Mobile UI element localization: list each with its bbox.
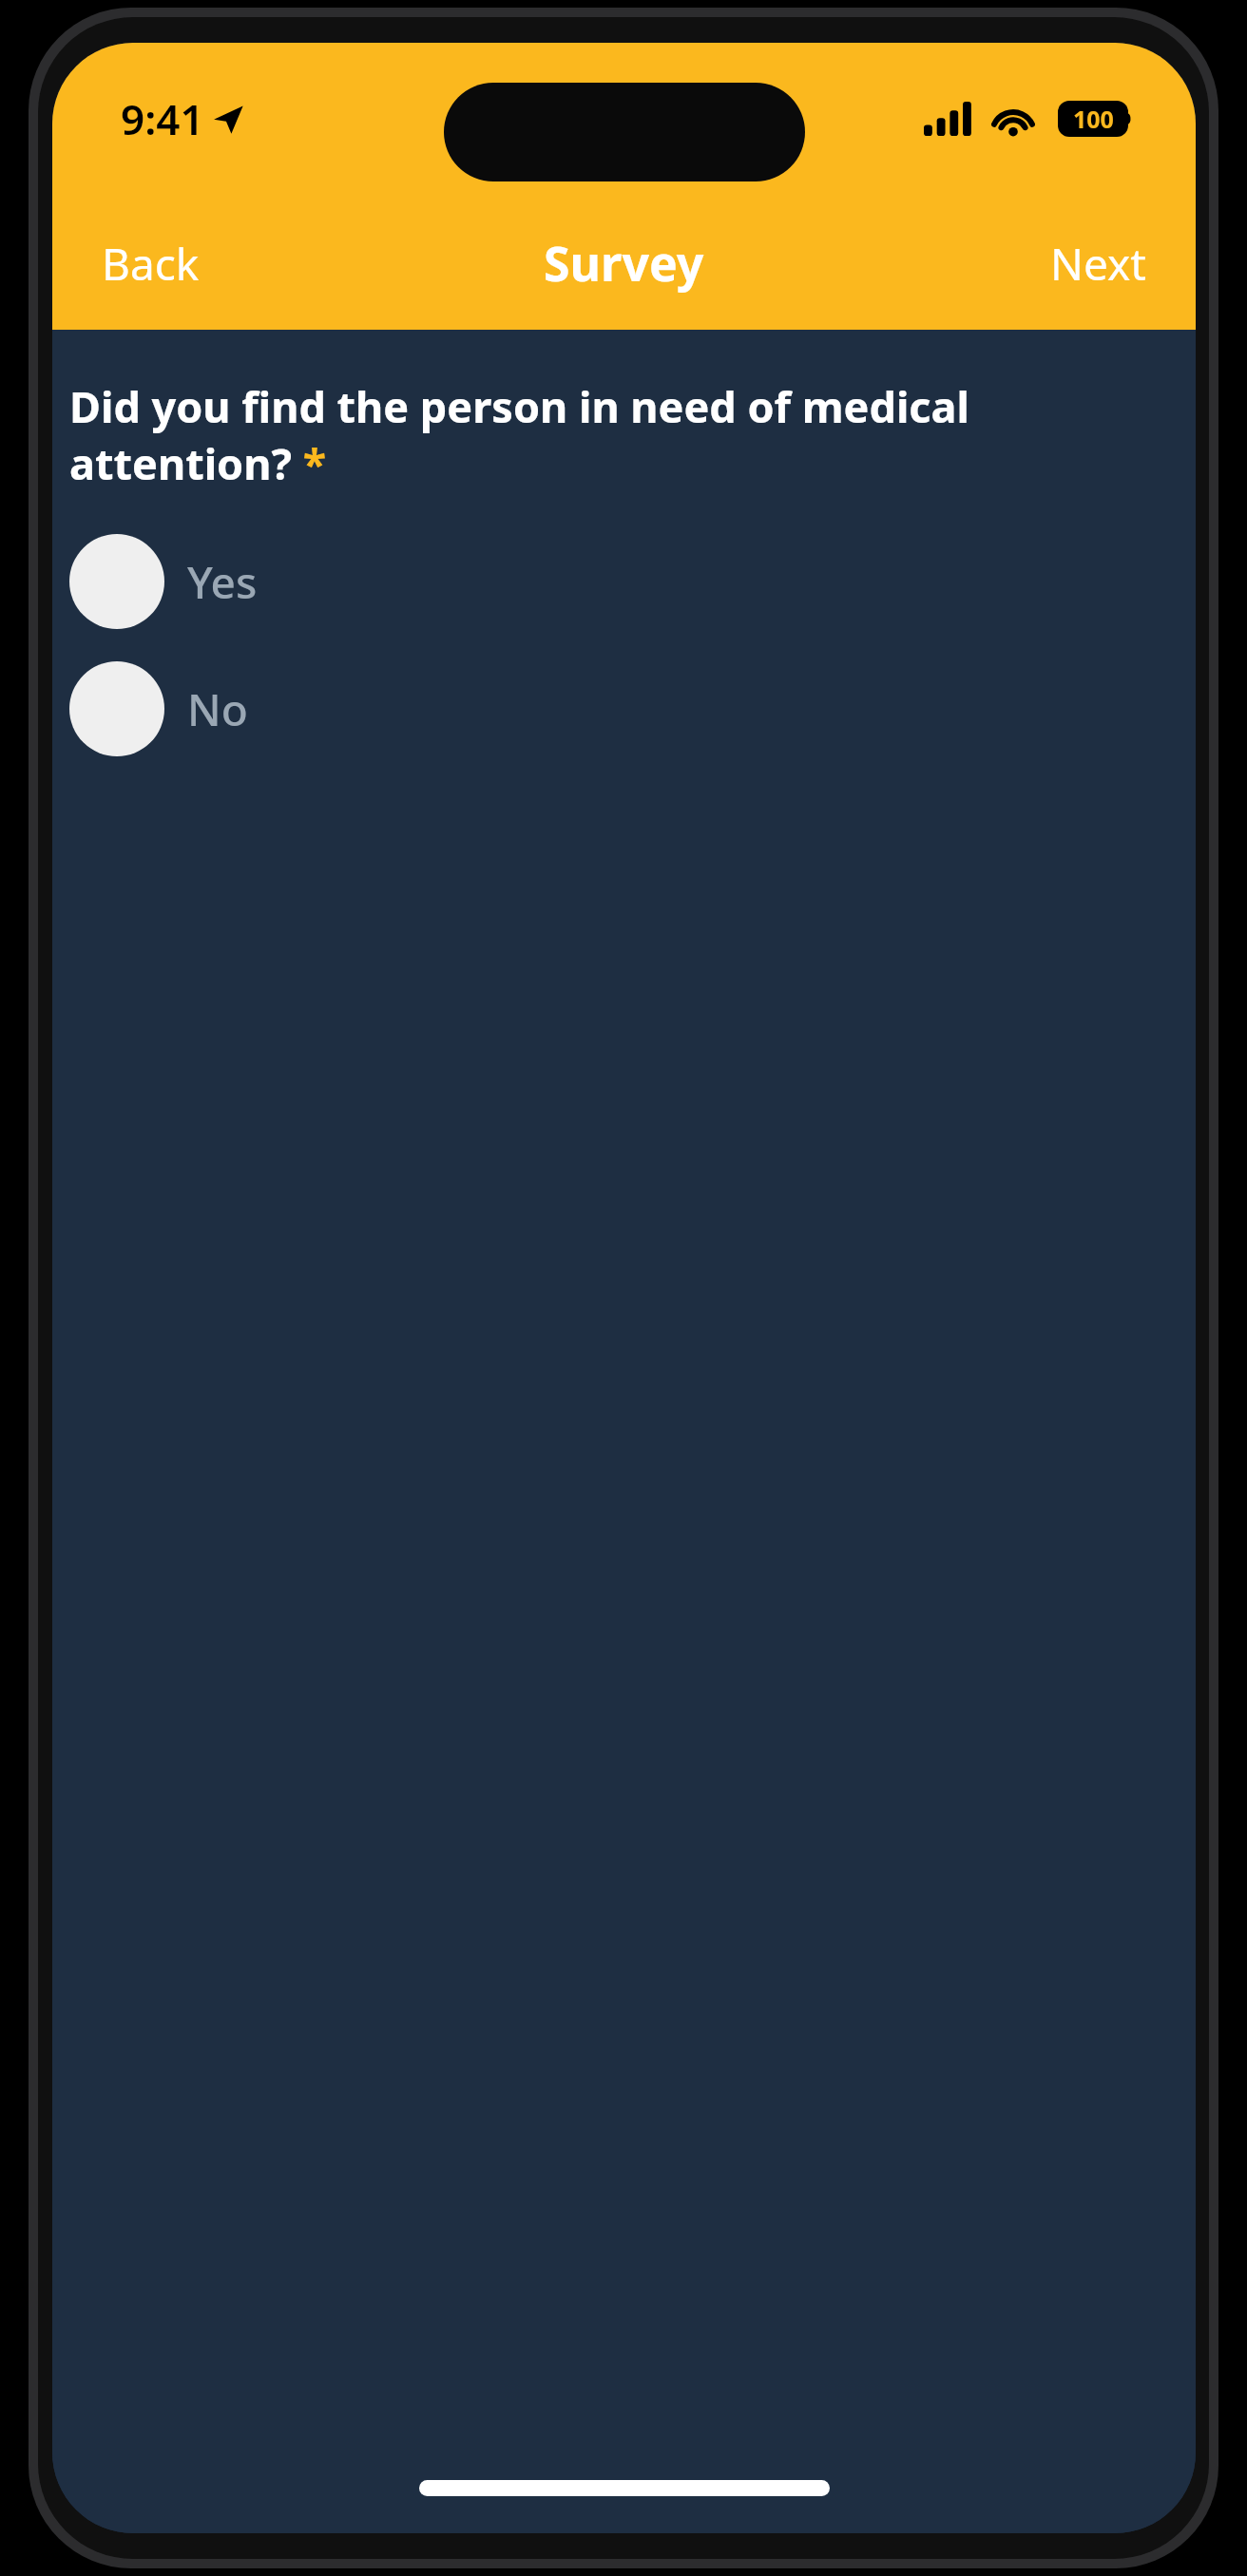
staticText: Next: [1050, 234, 1146, 294]
staticText: Survey: [544, 231, 704, 296]
button[interactable]: Yes: [69, 528, 1179, 635]
staticText: Yes: [187, 552, 258, 612]
staticText: Back: [102, 234, 200, 294]
staticText: 9:41: [121, 90, 204, 147]
button[interactable]: Back: [52, 213, 249, 315]
button[interactable]: No: [69, 656, 1179, 762]
staticText: Did you find the person in need of medic…: [69, 377, 1179, 492]
button[interactable]: Next: [1001, 213, 1196, 315]
staticText: 100: [1073, 103, 1114, 135]
staticText: No: [187, 679, 248, 739]
